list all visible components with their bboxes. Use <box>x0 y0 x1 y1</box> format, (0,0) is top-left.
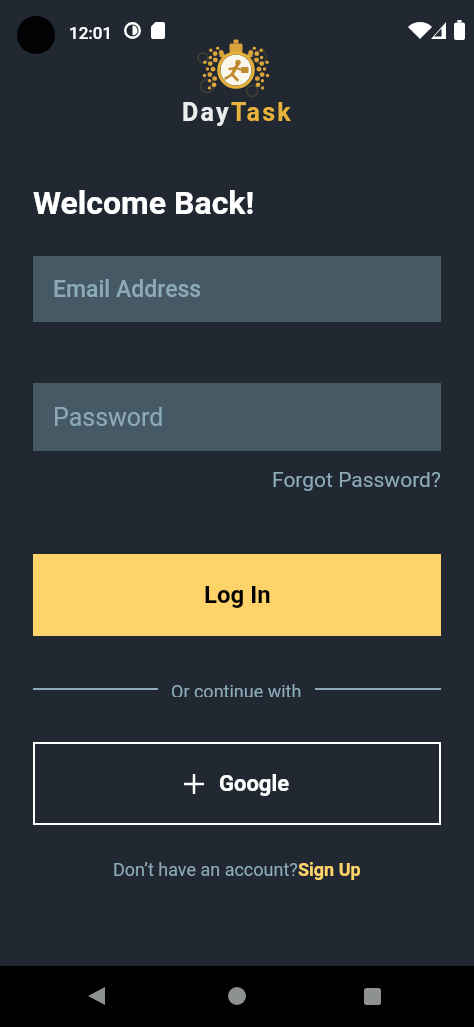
button[interactable]: Sign Up <box>298 859 361 880</box>
staticText: 12:01 <box>69 23 113 43</box>
staticText: Day <box>182 98 231 126</box>
staticText: Task <box>231 98 293 126</box>
staticText: Password <box>53 403 164 432</box>
staticText: Welcome Back! <box>33 184 255 222</box>
button[interactable] <box>354 978 390 1014</box>
staticText: Log In <box>204 581 271 609</box>
button[interactable]: Log In <box>33 554 441 636</box>
button[interactable] <box>219 978 255 1014</box>
staticText: Email Address <box>53 276 202 303</box>
staticText: Don’t have an account? <box>113 859 298 880</box>
button[interactable]: Email Address <box>33 256 441 322</box>
staticText: Or continue with <box>171 681 302 697</box>
button[interactable]: Google <box>33 742 441 825</box>
staticText: Google <box>219 771 290 797</box>
button[interactable] <box>78 978 114 1014</box>
button[interactable]: Forgot Password? <box>272 468 441 493</box>
button[interactable]: Password <box>33 383 441 451</box>
